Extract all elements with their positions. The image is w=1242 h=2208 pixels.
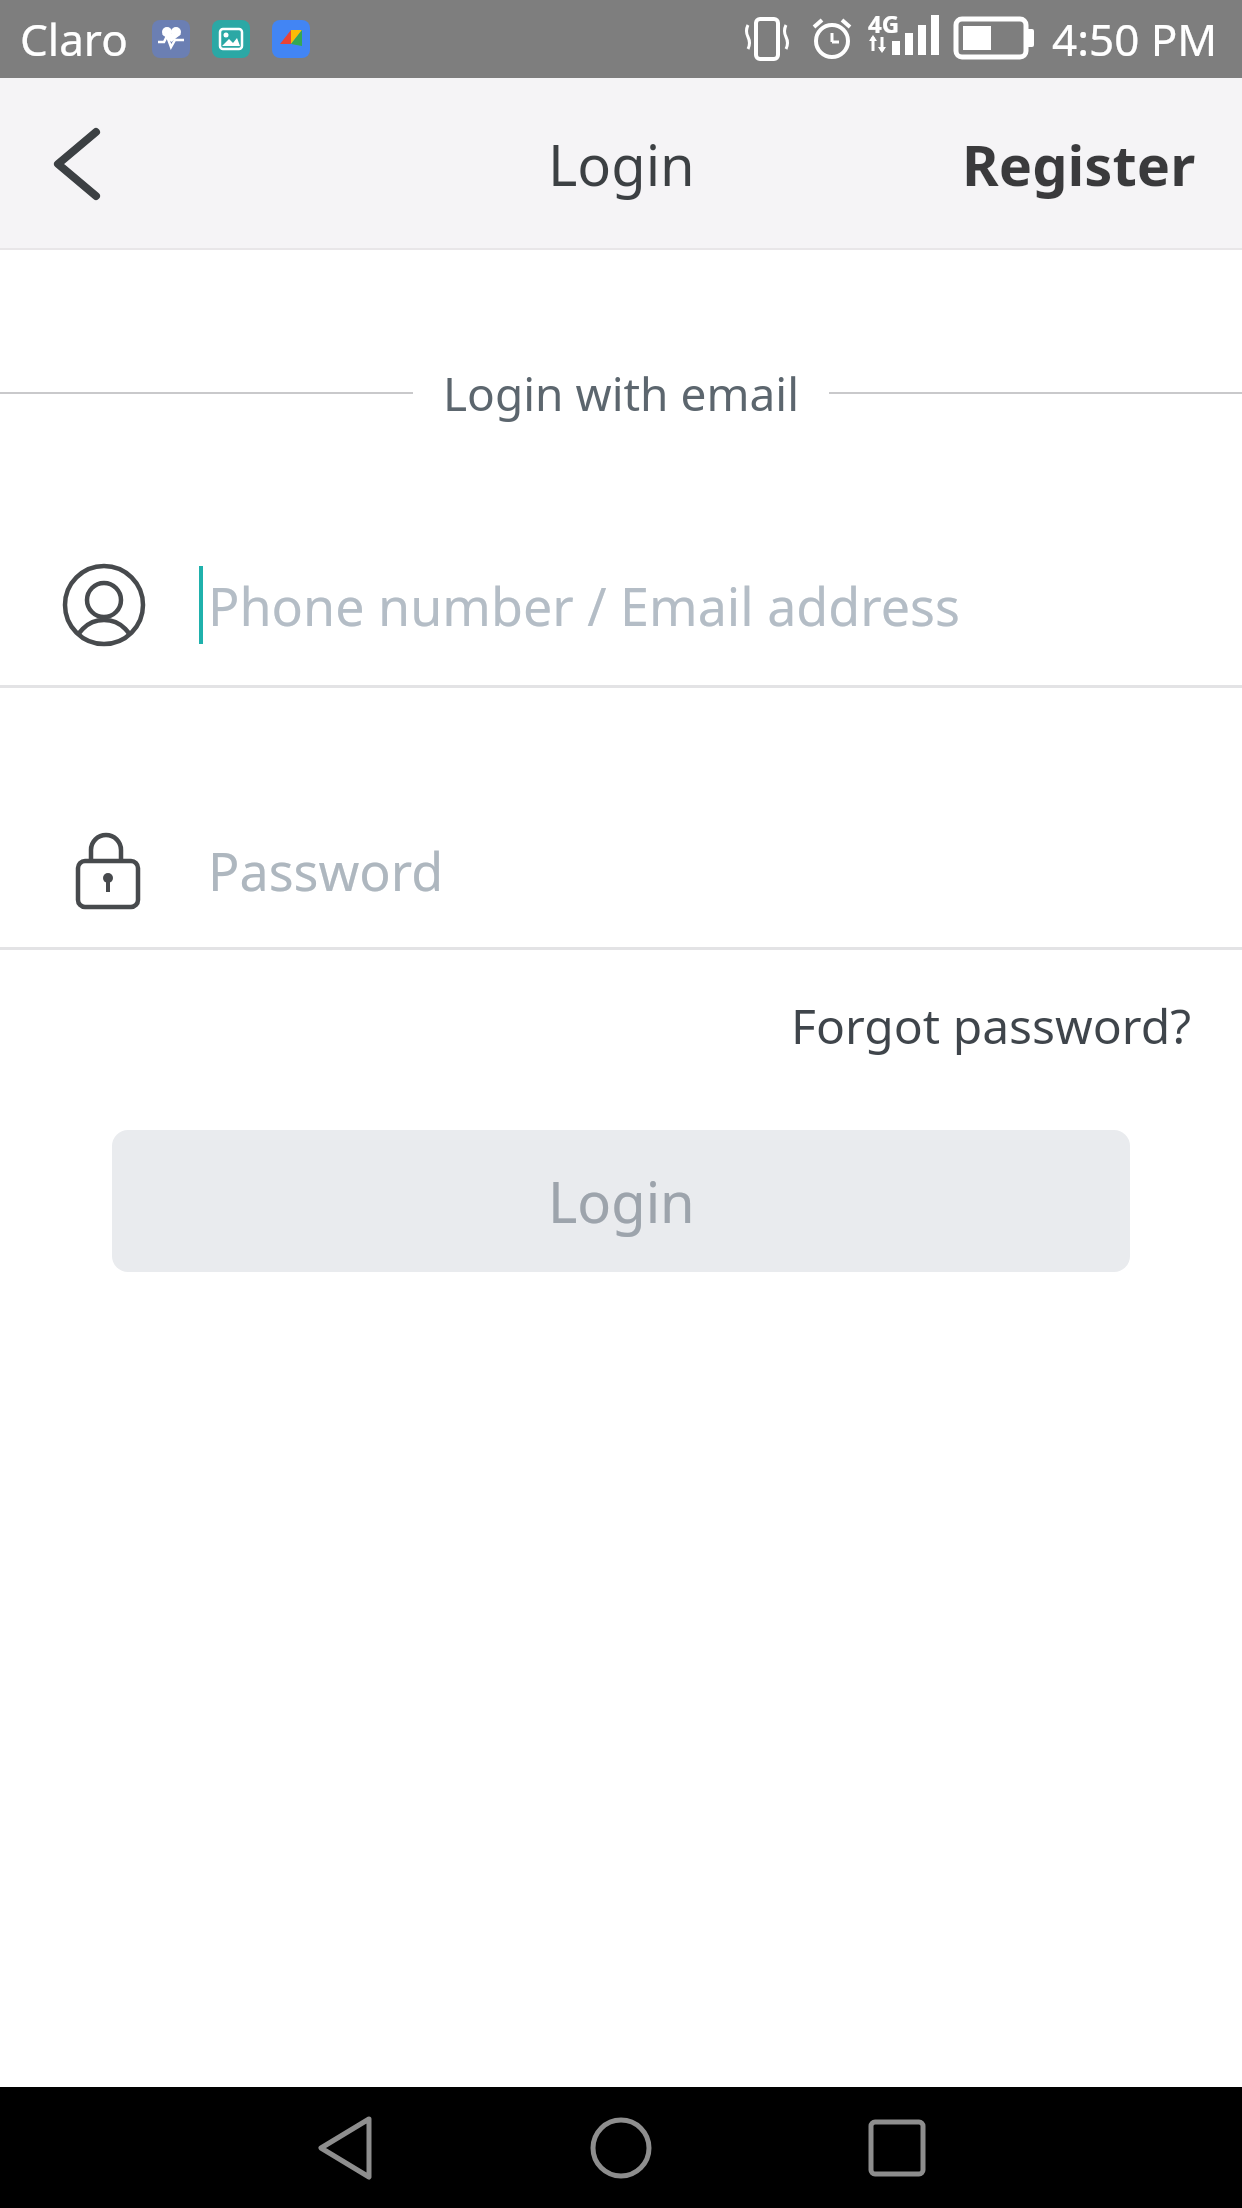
staticText: Phone number / Email address xyxy=(208,570,960,641)
staticText: Password xyxy=(208,835,444,906)
button[interactable] xyxy=(759,2087,1035,2208)
staticText: Forgot password? xyxy=(791,993,1192,1058)
button[interactable] xyxy=(483,2087,759,2208)
button[interactable] xyxy=(36,124,116,204)
staticText: Register xyxy=(962,126,1196,202)
staticText: 4G xyxy=(868,7,900,40)
staticText: Login xyxy=(548,126,695,202)
button[interactable]: Phone number / Email address xyxy=(0,522,1242,688)
staticText: Login with email xyxy=(443,362,799,425)
staticText: Login xyxy=(548,1163,695,1239)
button[interactable]: Login xyxy=(112,1130,1130,1272)
button[interactable]: Forgot password? xyxy=(791,990,1192,1060)
button[interactable]: Register xyxy=(962,126,1196,202)
button[interactable]: Password xyxy=(0,790,1242,950)
staticText: 4:50 PM xyxy=(1052,9,1218,69)
staticText: Claro xyxy=(20,9,128,69)
button[interactable] xyxy=(207,2087,483,2208)
